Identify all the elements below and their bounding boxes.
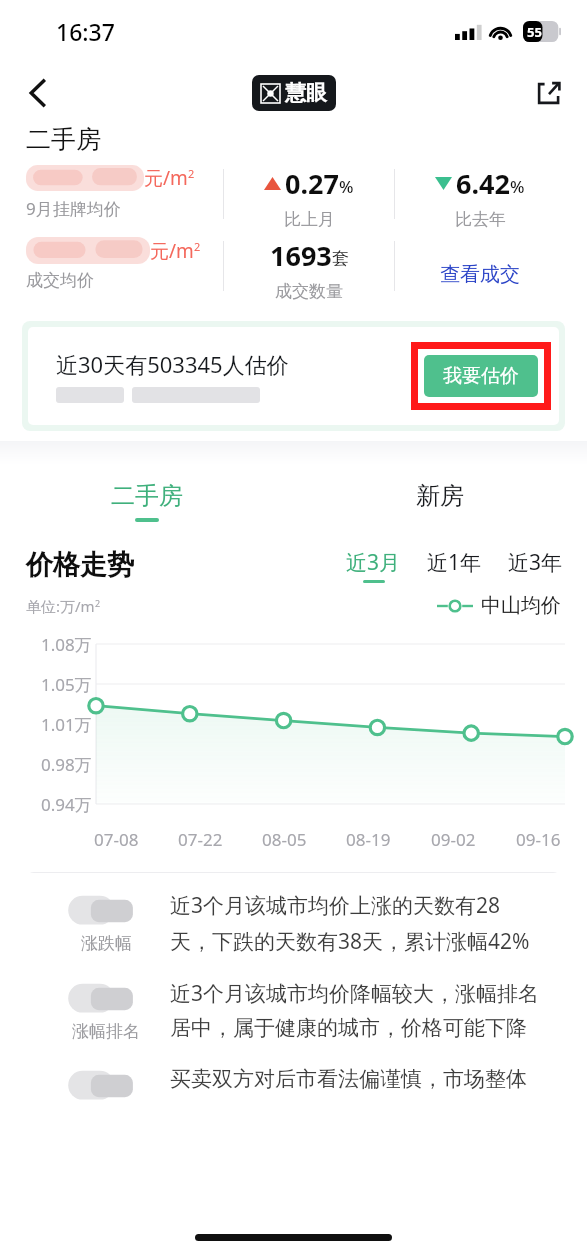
staticText: 16:37 bbox=[56, 16, 115, 47]
staticText: 买卖双方对后市看法偏谨慎，市场整体 bbox=[170, 1066, 527, 1092]
staticText: 套 bbox=[332, 248, 349, 269]
staticText: 1693 bbox=[270, 237, 332, 274]
staticText: 二手房 bbox=[111, 481, 183, 511]
staticText: 单位:万/m bbox=[26, 596, 95, 616]
button[interactable]: 近3月 bbox=[346, 548, 401, 583]
button[interactable]: 查看成交 bbox=[395, 237, 565, 311]
staticText: 新房 bbox=[416, 481, 464, 511]
button[interactable]: 近1年 bbox=[427, 548, 482, 583]
staticText: 08-19 bbox=[346, 828, 391, 851]
staticText: 09-16 bbox=[516, 828, 561, 851]
staticText: 比上月 bbox=[284, 209, 335, 230]
staticText: 0.98万 bbox=[41, 753, 92, 776]
staticText: 2 bbox=[188, 166, 195, 181]
button[interactable]: 买卖双方对后市看法偏谨慎，市场整体 bbox=[50, 1066, 545, 1106]
button[interactable]: 涨跌幅 bbox=[50, 891, 545, 955]
staticText: 1.05万 bbox=[41, 673, 92, 696]
staticText: 近3年 bbox=[508, 548, 563, 577]
staticText: 6.42 bbox=[456, 165, 510, 202]
staticText: 近3个月该城市均价上涨的天数有28 天，下跌的天数有38天，累计涨幅42% bbox=[170, 891, 530, 955]
button[interactable]: 近30天有503345人估价 bbox=[28, 327, 559, 425]
staticText: % bbox=[339, 175, 354, 198]
staticText: 0.27 bbox=[285, 165, 339, 202]
staticText: 2 bbox=[194, 239, 201, 254]
staticText: 成交均价 bbox=[26, 270, 94, 291]
staticText: 查看成交 bbox=[440, 262, 520, 287]
button[interactable]: Share bbox=[525, 69, 573, 117]
button[interactable]: 我要估价 bbox=[424, 355, 538, 397]
staticText: 08-05 bbox=[262, 828, 307, 851]
staticText: 比去年 bbox=[455, 209, 506, 230]
staticText: 涨幅排名 bbox=[72, 1021, 140, 1042]
staticText: 近3月 bbox=[346, 548, 401, 577]
staticText: 09-02 bbox=[431, 828, 476, 851]
staticText: 55 bbox=[527, 23, 542, 41]
staticText: 07-08 bbox=[94, 828, 139, 851]
staticText: 涨跌幅 bbox=[81, 933, 132, 954]
staticText: 9月挂牌均价 bbox=[26, 197, 121, 220]
button[interactable]: 新房 bbox=[293, 465, 587, 537]
staticText: 1.08万 bbox=[41, 633, 92, 656]
staticText: 成交数量 bbox=[275, 281, 343, 302]
button[interactable]: Back bbox=[14, 69, 62, 117]
button[interactable]: 二手房 bbox=[0, 465, 293, 537]
staticText: 我要估价 bbox=[443, 364, 519, 388]
staticText: 价格走势 bbox=[26, 548, 134, 582]
staticText: 近1年 bbox=[427, 548, 482, 577]
staticText: % bbox=[510, 175, 525, 198]
button[interactable]: 慧眼 bbox=[261, 80, 327, 106]
staticText: 近30天有503345人估价 bbox=[56, 349, 289, 379]
button[interactable]: 涨幅排名 bbox=[50, 979, 545, 1042]
staticText: 0.94万 bbox=[41, 793, 92, 816]
staticText: 慧眼 bbox=[285, 80, 327, 106]
staticText: 元/m bbox=[150, 238, 194, 264]
button[interactable]: 近3年 bbox=[508, 548, 563, 583]
staticText: 二手房 bbox=[26, 124, 101, 155]
staticText: 中山均价 bbox=[481, 593, 561, 618]
staticText: 07-22 bbox=[178, 828, 223, 851]
staticText: 近3个月该城市均价降幅较大，涨幅排名 居中，属于健康的城市，价格可能下降 bbox=[170, 979, 540, 1042]
staticText: 元/m bbox=[144, 165, 188, 191]
staticText: 2 bbox=[95, 597, 101, 609]
staticText: 1.01万 bbox=[41, 713, 92, 736]
